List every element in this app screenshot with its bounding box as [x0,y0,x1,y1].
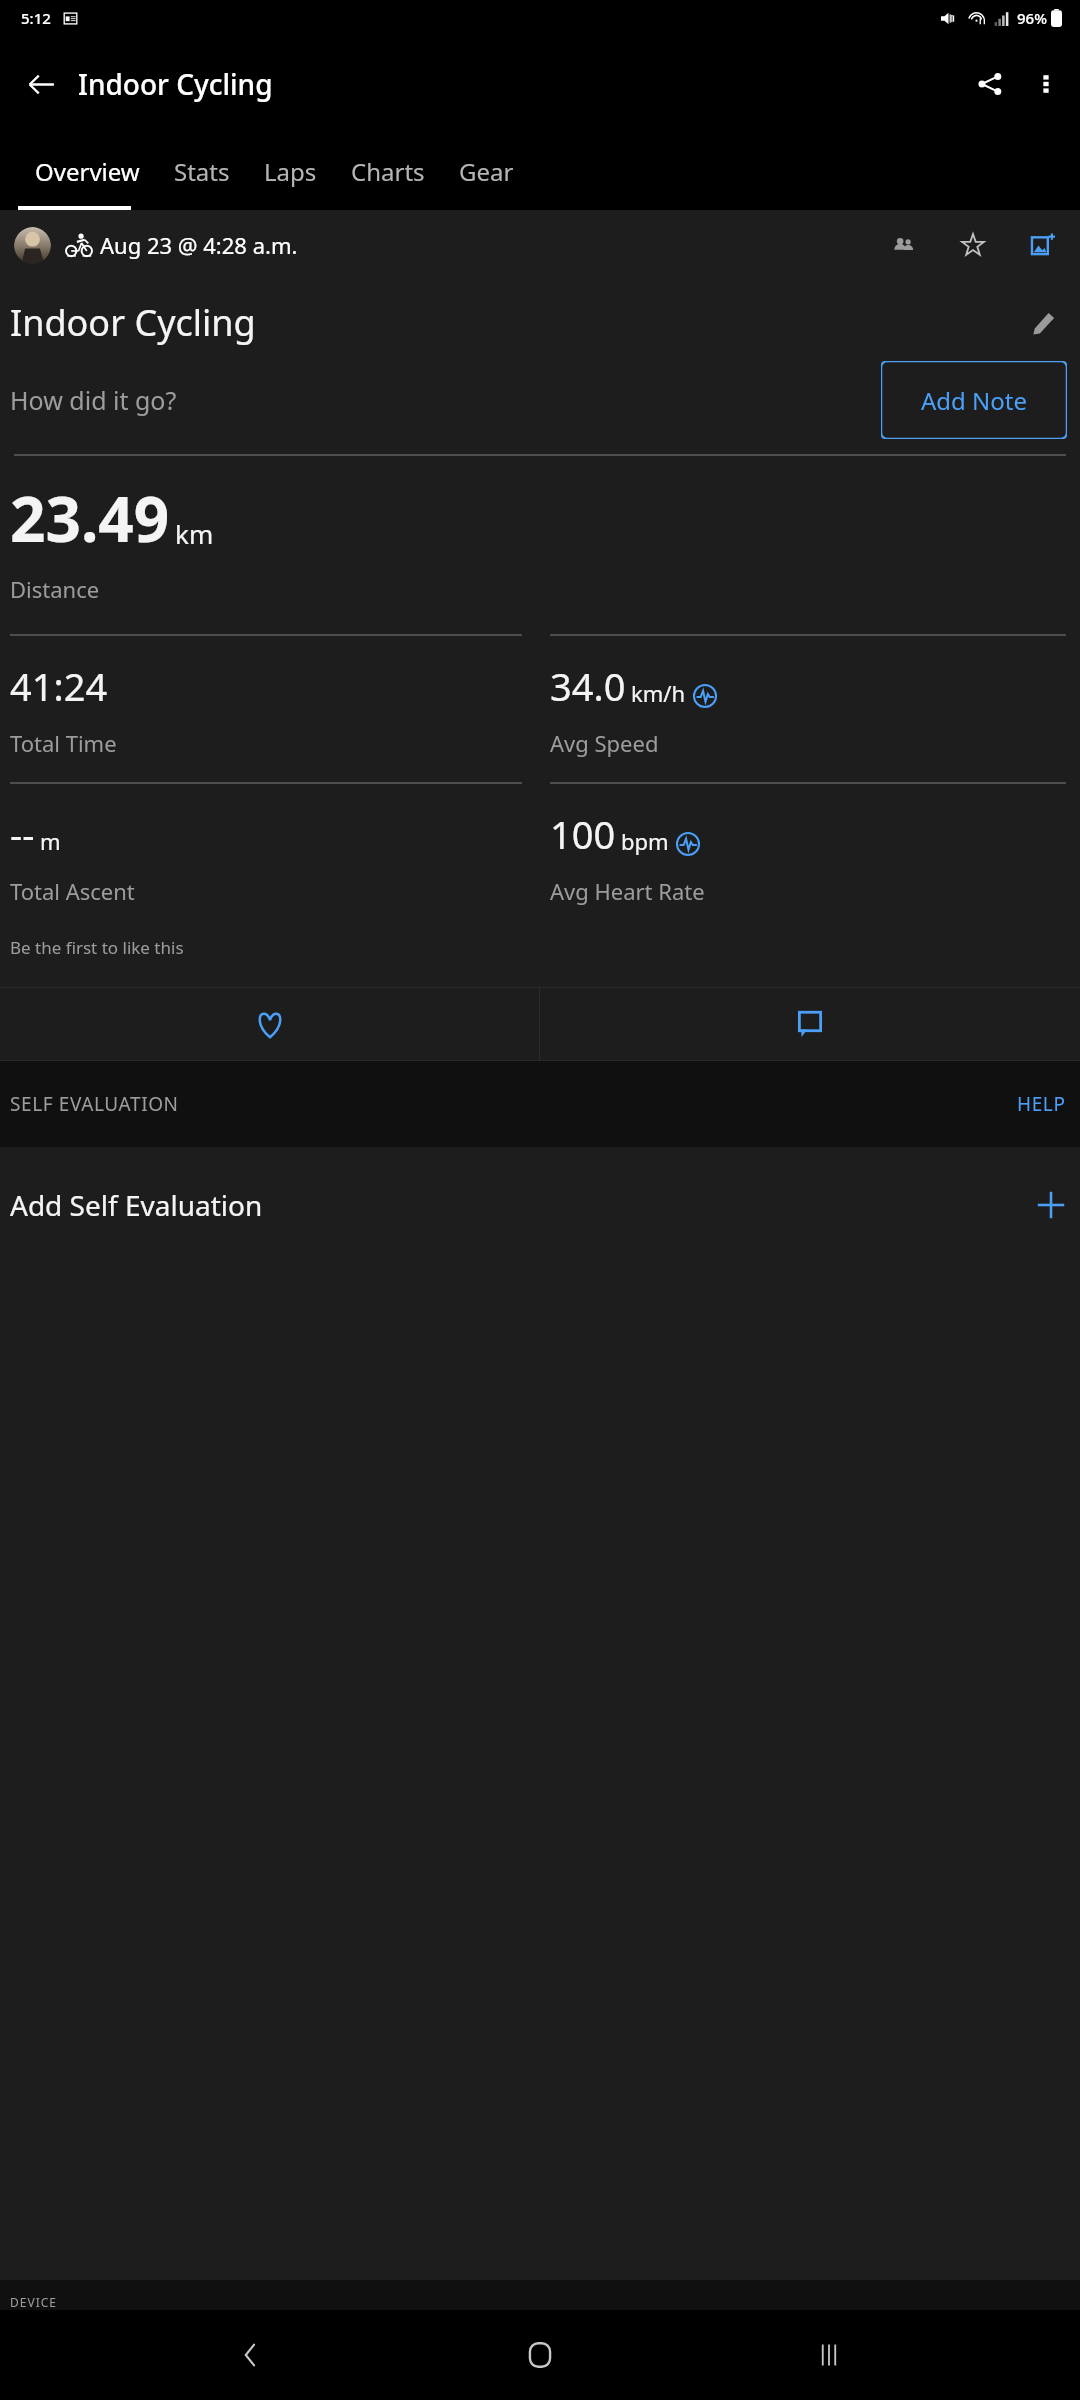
staticText: Laps [264,155,317,188]
staticText: Total Ascent [10,876,135,906]
staticText: km/h [631,678,686,708]
staticText: Distance [10,574,100,604]
staticText: DEVICE [10,2294,57,2310]
button[interactable]: Profile [14,227,51,264]
staticText: 96% [1017,8,1047,28]
button[interactable]: Participants [880,222,926,268]
staticText: Be the first to like this [10,936,184,959]
button[interactable]: Favorite [950,222,996,268]
button[interactable]: Recent apps [791,2317,867,2393]
button[interactable]: Add Note [881,361,1067,439]
button[interactable]: Stats [157,132,247,210]
staticText: 41:24 [10,660,108,712]
staticText: Indoor Cycling [10,298,256,347]
staticText: m [40,826,61,856]
staticText: 23.49 [10,476,170,560]
staticText: Total Time [10,728,117,758]
button[interactable]: Add Self Evaluation [0,1147,1080,1263]
button[interactable]: HELP [1003,1083,1080,1125]
button[interactable]: Gear [442,132,531,210]
button[interactable]: 100 [550,782,1066,906]
button[interactable]: Overview [18,132,157,210]
staticText: Gear [459,155,514,188]
staticText: 100 [550,808,616,860]
staticText: Add Note [921,384,1028,417]
staticText: bpm [621,826,669,856]
button[interactable]: 41:24 [10,634,522,758]
button[interactable]: 34.0 [550,634,1066,758]
button[interactable]: Laps [247,132,334,210]
staticText: HELP [1017,1091,1066,1117]
staticText: Aug 23 @ 4:28 a.m. [100,230,298,260]
button[interactable]: -- [10,782,522,906]
staticText: Avg Speed [550,728,659,758]
staticText: Charts [351,155,425,188]
staticText: Overview [35,155,140,188]
staticText: Indoor Cycling [78,65,273,103]
staticText: 5:12 [21,8,51,28]
button[interactable]: Charts [334,132,442,210]
staticText: Avg Heart Rate [550,876,705,906]
button[interactable]: Comment [540,988,1080,1060]
button[interactable]: Back [12,55,70,113]
button[interactable]: Add photo [1020,222,1066,268]
staticText: How did it go? [10,383,177,417]
button[interactable]: Share [962,56,1018,112]
button[interactable]: More options [1018,56,1074,112]
staticText: Add Self Evaluation [10,1186,263,1224]
staticText: SELF EVALUATION [10,1091,179,1117]
button[interactable]: Home [502,2317,578,2393]
button[interactable]: Edit title [1020,300,1066,346]
staticText: Stats [174,155,230,188]
staticText: 34.0 [550,660,626,712]
staticText: km [175,516,214,551]
button[interactable]: Like [0,988,539,1060]
staticText: -- [10,808,35,860]
button[interactable]: Back [213,2317,289,2393]
